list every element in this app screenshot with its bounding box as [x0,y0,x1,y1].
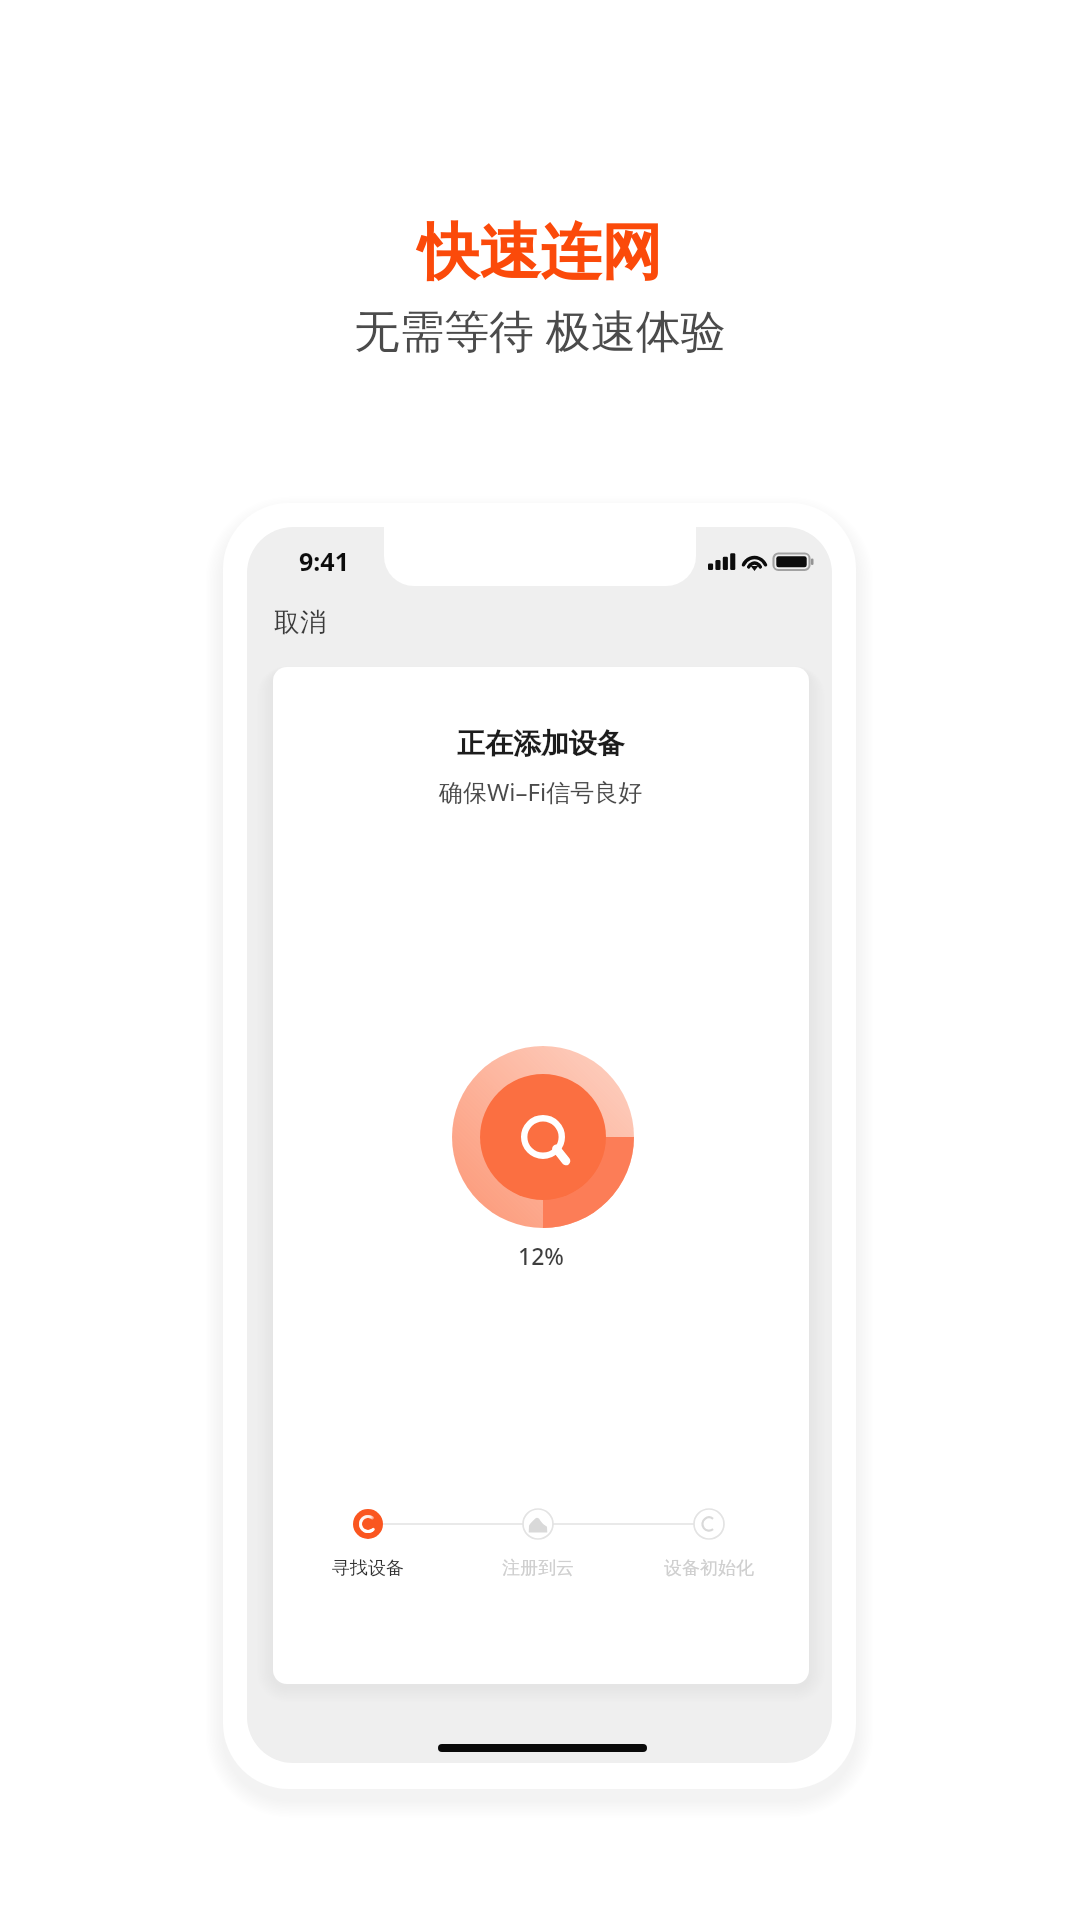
staticText: 确保Wi–Fi信号良好 [439,775,643,808]
staticText: 快速连网 [418,214,662,291]
button[interactable]: 注册到云 [476,1503,600,1589]
staticText: 9:41 [299,544,349,578]
staticText: 寻找设备 [332,1557,404,1580]
button[interactable]: 取消 [257,591,351,647]
staticText: 12% [518,1240,564,1271]
staticText: 设备初始化 [664,1557,754,1580]
other: Searching for devices, 12 percent [452,1046,634,1228]
button[interactable]: 寻找设备 [306,1503,430,1589]
button[interactable]: 设备初始化 [647,1503,771,1589]
staticText: 正在添加设备 [457,726,625,761]
staticText: 注册到云 [502,1557,574,1580]
staticText: 无需等待 极速体验 [354,299,726,360]
staticText: 取消 [274,606,326,639]
